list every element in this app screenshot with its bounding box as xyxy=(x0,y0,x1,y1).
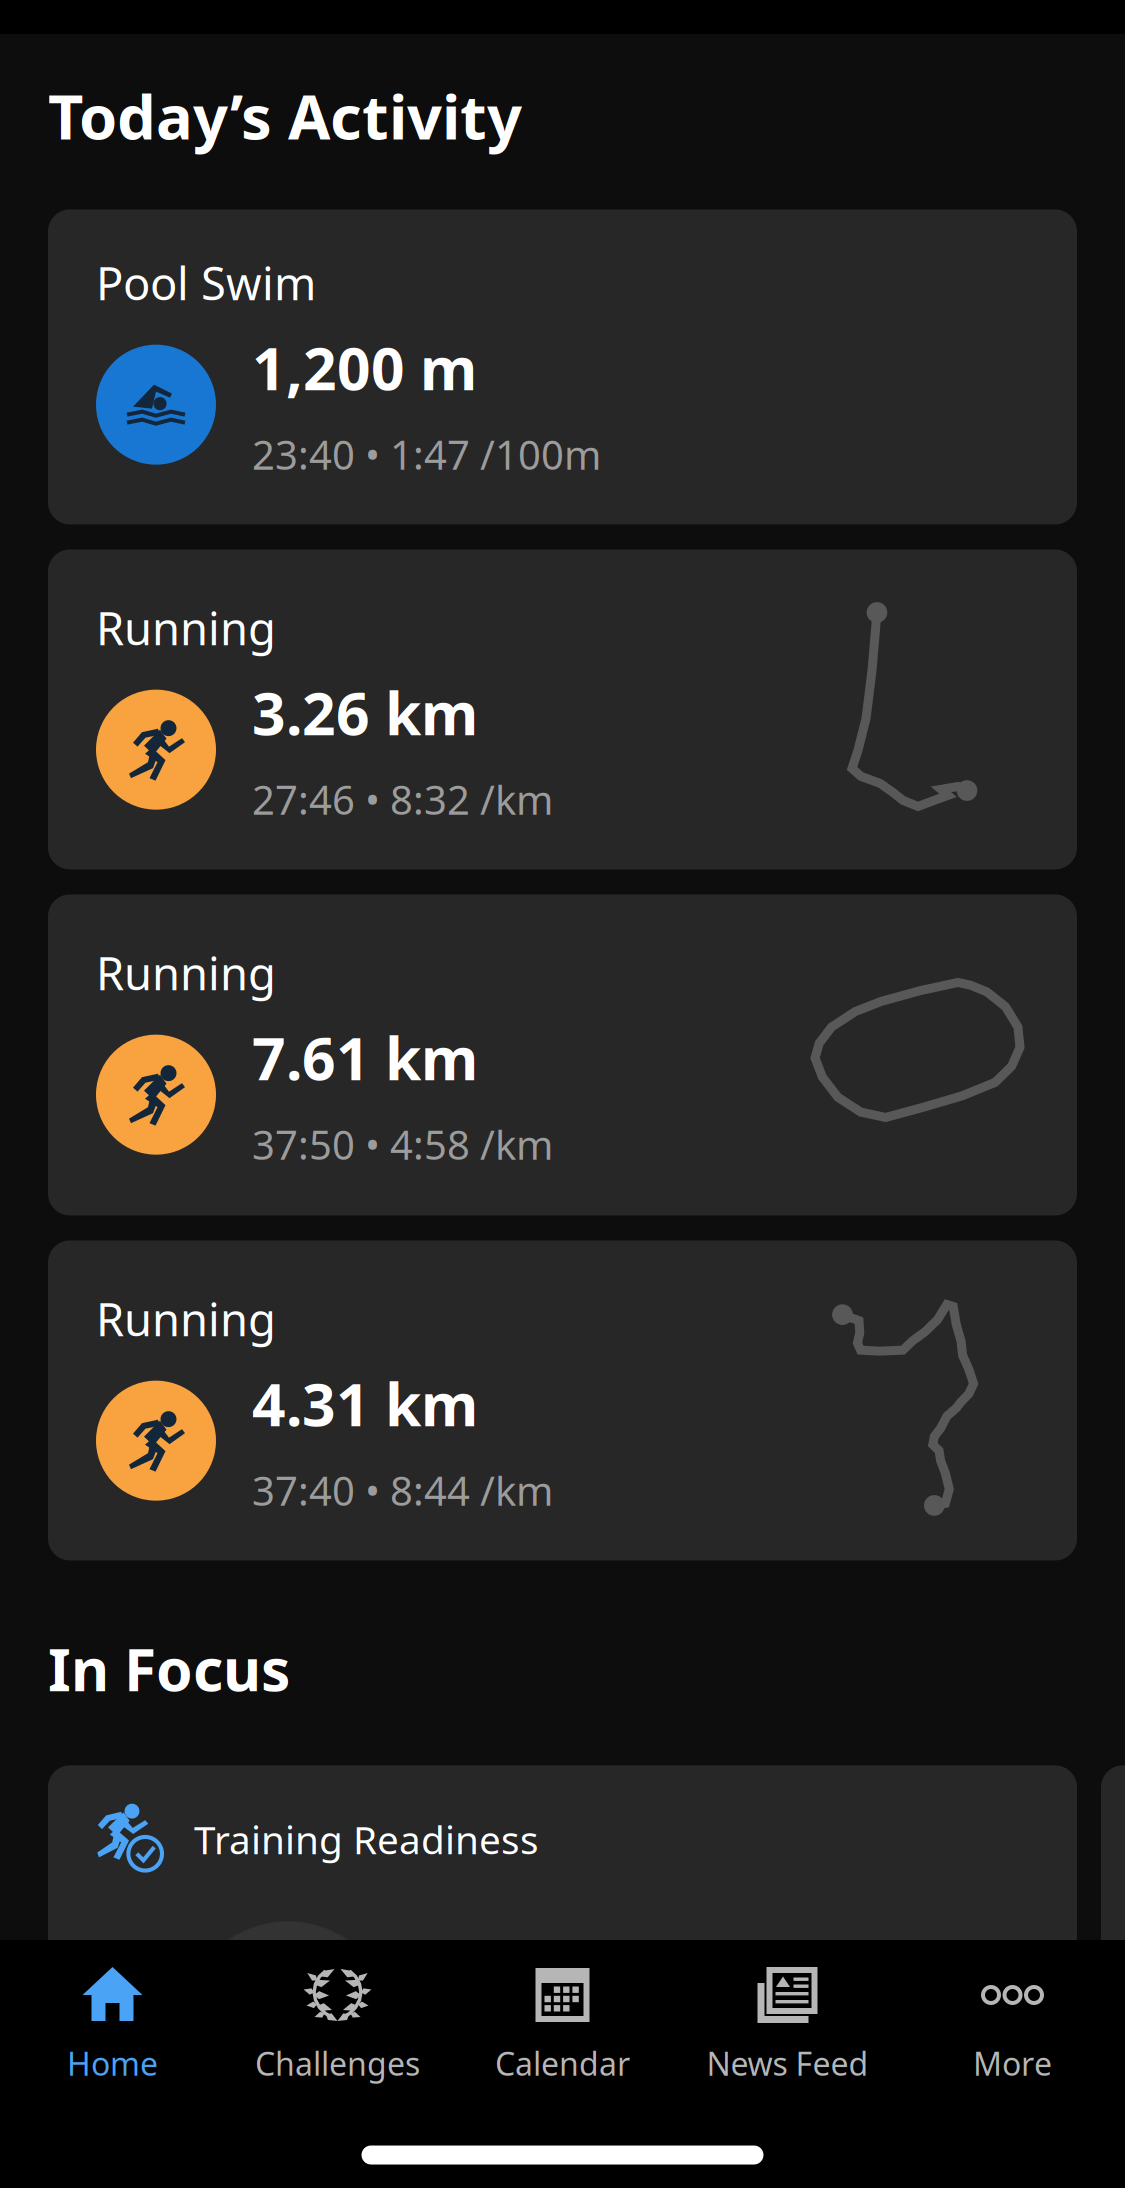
staticText: Running xyxy=(96,942,276,1003)
button[interactable]: Calendar xyxy=(450,1940,675,2092)
staticText: Pool Swim xyxy=(96,252,316,313)
staticText: Today’s Activity xyxy=(48,75,522,156)
button[interactable]: Challenges xyxy=(225,1940,450,2092)
button[interactable]: More xyxy=(900,1940,1125,2092)
staticText: 1,200 m xyxy=(252,329,477,406)
staticText: 3.26 km xyxy=(252,674,478,751)
staticText: Challenges xyxy=(255,2042,420,2084)
staticText: Running xyxy=(96,1288,276,1349)
staticText: 27:46 • 8:32 /km xyxy=(252,773,553,826)
staticText: Running xyxy=(96,597,276,658)
button[interactable]: Running xyxy=(48,1240,1077,1560)
button[interactable]: Running xyxy=(48,894,1077,1215)
staticText: 37:40 • 8:44 /km xyxy=(252,1464,553,1517)
button[interactable]: News Feed xyxy=(675,1940,900,2092)
button[interactable]: Next insight card xyxy=(1101,1765,1125,2065)
button[interactable]: Training Readiness xyxy=(48,1765,1077,2065)
button[interactable]: Pool Swim xyxy=(48,209,1077,524)
staticText: More xyxy=(973,2042,1052,2084)
button[interactable]: Home xyxy=(0,1940,225,2092)
staticText: Home xyxy=(67,2042,158,2084)
staticText: Calendar xyxy=(495,2042,630,2084)
staticText: 37:50 • 4:58 /km xyxy=(252,1118,553,1171)
staticText: 23:40 • 1:47 /100m xyxy=(252,428,601,481)
button[interactable]: Running xyxy=(48,549,1077,869)
staticText: 4.31 km xyxy=(252,1365,478,1442)
staticText: In Focus xyxy=(48,1629,290,1707)
staticText: Training Readiness xyxy=(194,1814,539,1865)
staticText: News Feed xyxy=(706,2042,868,2084)
staticText: 7.61 km xyxy=(252,1019,478,1096)
